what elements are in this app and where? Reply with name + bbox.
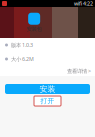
- button[interactable]: 打开: [34, 96, 61, 106]
- staticText: 版本 1.0.3: [11, 41, 33, 49]
- staticText: 安装: [39, 84, 55, 94]
- staticText: wifi: [74, 0, 82, 7]
- staticText: 查看详情 >: [67, 67, 91, 75]
- staticText: 大小 6.2M: [11, 55, 34, 63]
- staticText: 打开: [40, 97, 54, 105]
- staticText: 安装包: [27, 26, 42, 32]
- button[interactable]: 安装: [5, 84, 90, 94]
- staticText: 4:22: [83, 0, 93, 7]
